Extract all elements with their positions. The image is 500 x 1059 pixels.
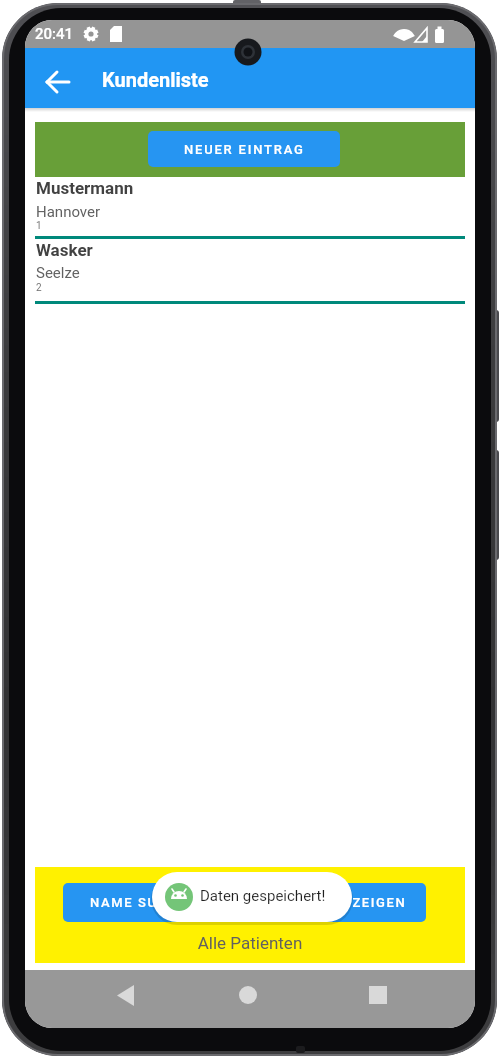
button[interactable]: NAME SUCHEN	[63, 883, 225, 922]
button[interactable]	[34, 54, 82, 102]
staticText: Daten gespeichert!	[200, 887, 326, 905]
staticText: Wasker	[36, 240, 93, 260]
button[interactable]	[349, 975, 409, 1019]
staticText: Seelze	[36, 264, 80, 282]
button[interactable]	[218, 975, 278, 1019]
staticText: Kundenliste	[102, 68, 209, 91]
button[interactable]: ALLE ANZEIGEN	[270, 883, 426, 922]
button[interactable]	[105, 975, 165, 1019]
button[interactable]: NEUER EINTRAG	[148, 131, 340, 167]
staticText: NEUER EINTRAG	[184, 142, 305, 157]
staticText: Mustermann	[36, 178, 134, 198]
staticText: ALLE ANZEIGEN	[290, 895, 407, 910]
staticText: Alle Patienten	[35, 933, 465, 953]
staticText: Hannover	[36, 203, 101, 221]
staticText: NAME SUCHEN	[90, 895, 199, 910]
staticText: 2	[36, 282, 42, 294]
staticText: 20:41	[35, 25, 74, 43]
staticText: 1	[36, 220, 42, 232]
